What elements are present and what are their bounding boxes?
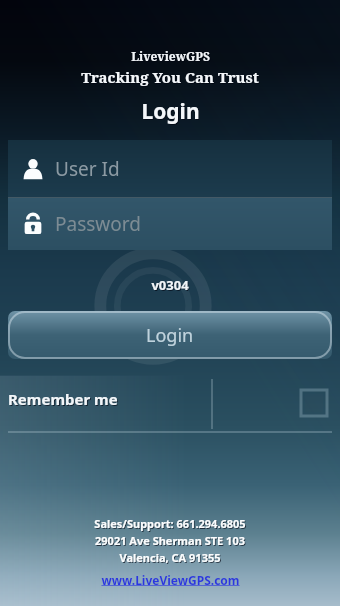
staticText: v0304: [152, 277, 190, 295]
staticText: Sales/Support: 661.294.6805: [95, 517, 247, 532]
button[interactable]: User Id: [8, 140, 332, 197]
button[interactable]: Remember me: [0, 375, 340, 423]
staticText: Sales/Support: 661.294.6805: [94, 516, 246, 531]
staticText: 29021 Ave Sherman STE 103: [96, 534, 246, 549]
staticText: Tracking You Can Trust: [82, 68, 260, 88]
button[interactable]: Password: [8, 198, 332, 250]
button[interactable]: www.LiveViewGPS.com: [0, 572, 340, 588]
staticText: User Id: [55, 156, 120, 182]
staticText: Login: [146, 323, 194, 348]
staticText: LiveviewGPS: [132, 49, 211, 65]
staticText: v0304: [151, 276, 189, 294]
staticText: Remember me: [8, 389, 118, 409]
staticText: 29021 Ave Sherman STE 103: [95, 533, 245, 548]
staticText: Valencia, CA 91355: [120, 551, 222, 566]
staticText: Password: [55, 211, 141, 237]
staticText: Login: [142, 98, 201, 127]
staticText: www.LiveViewGPS.com: [101, 572, 240, 588]
staticText: LiveviewGPS: [131, 48, 210, 64]
button[interactable]: Login: [8, 311, 332, 359]
staticText: Remember me: [9, 390, 119, 410]
button[interactable]: Remember me checkbox: [301, 390, 327, 416]
staticText: Tracking You Can Trust: [81, 67, 259, 87]
staticText: Login: [141, 97, 200, 126]
staticText: Valencia, CA 91355: [119, 550, 221, 565]
